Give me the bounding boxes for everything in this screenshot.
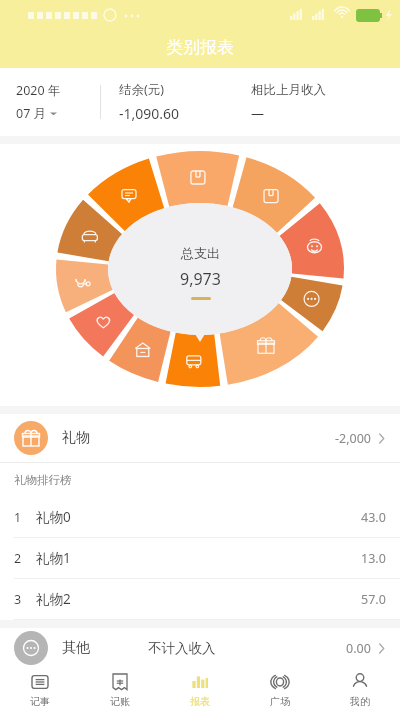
staticText: 礼物2 xyxy=(36,590,71,608)
staticText: 相比上月收入 xyxy=(251,82,326,98)
button[interactable]: 广场 xyxy=(240,668,320,711)
staticText: 礼物 xyxy=(62,429,90,447)
button[interactable]: 记事 xyxy=(0,668,80,711)
button[interactable]: 2020 年 xyxy=(16,82,100,122)
staticText: 0.00 xyxy=(346,640,371,657)
staticText: 类别报表 xyxy=(166,37,234,58)
staticText: 礼物排行榜 xyxy=(14,473,72,487)
staticText: 礼物1 xyxy=(36,549,71,567)
button[interactable]: 其他 xyxy=(0,628,400,668)
staticText: 我的 xyxy=(350,695,370,708)
staticText: 报表 xyxy=(190,695,210,708)
staticText: 总支出 xyxy=(181,245,220,261)
button[interactable]: 2 xyxy=(0,538,400,578)
staticText: 其他 xyxy=(62,639,90,657)
staticText: 结余(元) xyxy=(119,81,165,98)
staticText: 2 xyxy=(14,550,22,567)
button[interactable]: 3 xyxy=(0,579,400,619)
button[interactable]: 礼物 xyxy=(0,414,400,462)
button[interactable]: 报表 xyxy=(160,668,240,711)
staticText: 3 xyxy=(14,591,22,608)
button[interactable]: 我的 xyxy=(320,668,400,711)
staticText: 1 xyxy=(14,509,22,526)
staticText: 57.0 xyxy=(361,591,386,608)
staticText: -2,000 xyxy=(335,430,371,447)
staticText: 礼物0 xyxy=(36,508,71,526)
staticText: 广场 xyxy=(270,695,290,708)
staticText: -1,090.60 xyxy=(119,104,180,123)
staticText: 记事 xyxy=(30,695,50,708)
staticText: 07 月 xyxy=(16,105,47,122)
button[interactable]: 1 xyxy=(0,497,400,537)
staticText: 记账 xyxy=(110,695,130,708)
button[interactable]: 记账 xyxy=(80,668,160,711)
staticText: 43.0 xyxy=(361,509,386,526)
staticText: 不计入收入 xyxy=(148,640,216,657)
staticText: 13.0 xyxy=(361,550,386,567)
staticText: 9,973 xyxy=(180,268,221,290)
staticText: — xyxy=(251,104,265,122)
staticText: 2020 年 xyxy=(16,82,61,99)
